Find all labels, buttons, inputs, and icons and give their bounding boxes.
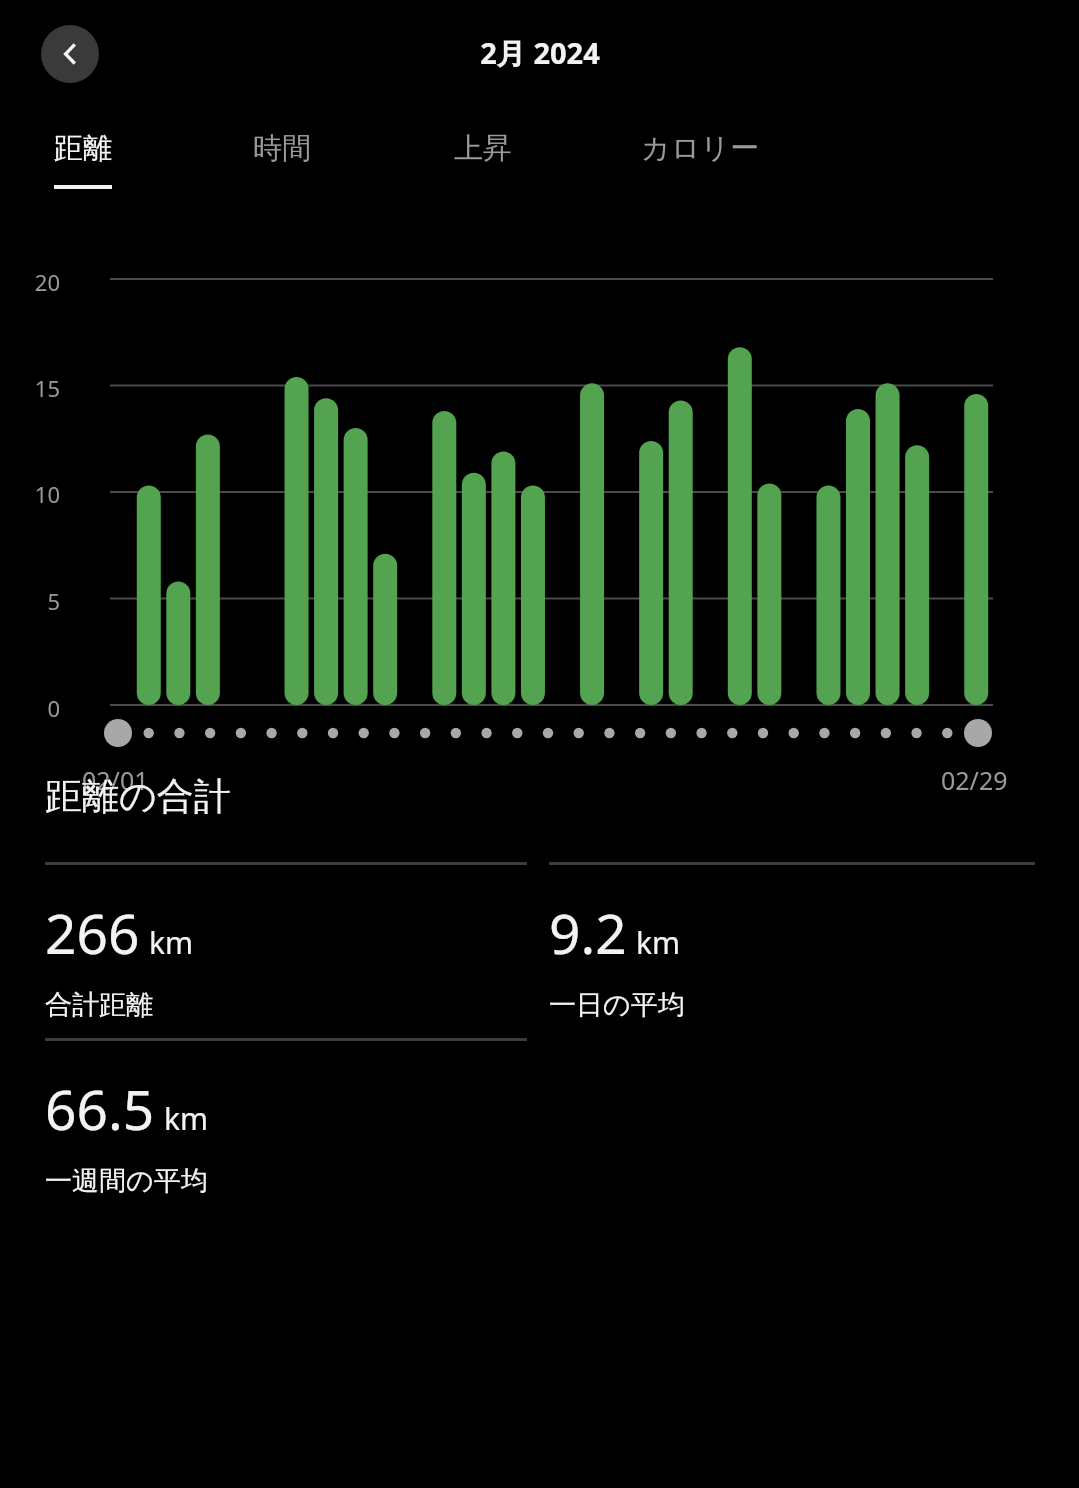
staticText: 9.2 — [549, 895, 627, 970]
staticText: 15 — [12, 373, 60, 403]
staticText: カロリー — [641, 130, 760, 167]
button[interactable]: Back — [41, 25, 99, 83]
button[interactable]: 上昇 — [440, 122, 526, 193]
staticText: km — [164, 1098, 209, 1139]
staticText: 02/01 — [82, 763, 149, 797]
staticText: 一週間の平均 — [45, 1164, 208, 1198]
button[interactable]: 266 — [0, 862, 549, 1022]
button[interactable]: カロリー — [627, 122, 774, 193]
staticText: 距離の合計 — [45, 773, 231, 820]
button[interactable]: 距離 — [40, 122, 126, 197]
staticText: 2月 2024 — [480, 33, 600, 73]
button[interactable]: 66.5 — [0, 1038, 549, 1198]
staticText: 上昇 — [454, 130, 512, 167]
staticText: 距離 — [54, 130, 112, 167]
button[interactable]: 時間 — [239, 122, 325, 193]
staticText: 0 — [12, 693, 60, 723]
staticText: 66.5 — [45, 1071, 155, 1146]
staticText: 02/29 — [941, 763, 1008, 797]
staticText: 266 — [45, 895, 140, 970]
staticText: 5 — [12, 586, 60, 616]
staticText: 一日の平均 — [549, 988, 685, 1022]
staticText: 10 — [12, 479, 60, 509]
staticText: 合計距離 — [45, 988, 153, 1022]
staticText: km — [636, 922, 681, 963]
staticText: 時間 — [253, 130, 311, 167]
staticText: 20 — [12, 267, 60, 297]
button[interactable]: 9.2 — [549, 862, 1035, 1022]
staticText: km — [149, 922, 194, 963]
